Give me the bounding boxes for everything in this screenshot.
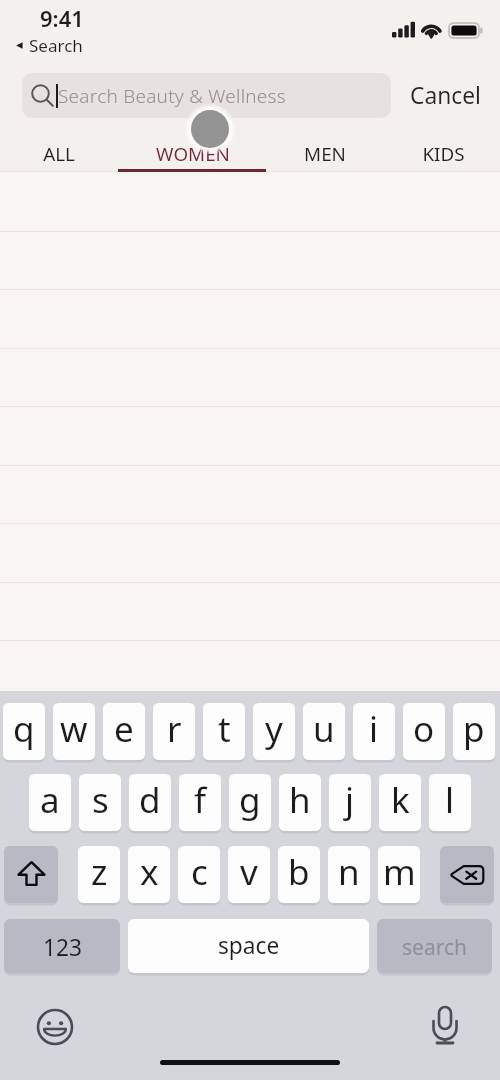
- staticText: d: [139, 776, 161, 824]
- staticText: ALL: [43, 141, 75, 167]
- button[interactable]: w: [53, 703, 95, 760]
- button[interactable]: u: [303, 703, 345, 760]
- staticText: z: [91, 848, 108, 896]
- staticText: p: [463, 705, 485, 753]
- button[interactable]: Search: [12, 34, 85, 56]
- staticText: w: [60, 705, 88, 753]
- button[interactable]: b: [278, 846, 320, 903]
- button[interactable]: i: [353, 703, 395, 760]
- button[interactable]: n: [328, 846, 370, 903]
- button[interactable]: 123: [4, 919, 120, 973]
- staticText: l: [445, 776, 455, 824]
- staticText: x: [140, 848, 159, 896]
- button[interactable]: Shift: [4, 846, 58, 903]
- staticText: q: [13, 705, 35, 753]
- staticText: u: [313, 705, 335, 753]
- button[interactable]: h: [279, 774, 321, 831]
- button[interactable]: k: [379, 774, 421, 831]
- button[interactable]: j: [329, 774, 371, 831]
- button[interactable]: MEN: [263, 136, 387, 172]
- button[interactable]: r: [153, 703, 195, 760]
- button[interactable]: Search Beauty & Wellness: [22, 73, 391, 118]
- staticText: m: [383, 848, 416, 896]
- button[interactable]: Cancel: [404, 78, 487, 113]
- staticText: Search: [29, 34, 83, 56]
- staticText: e: [114, 705, 134, 753]
- staticText: t: [218, 705, 231, 753]
- staticText: space: [218, 930, 280, 961]
- button[interactable]: o: [403, 703, 445, 760]
- button[interactable]: Backspace: [440, 846, 494, 903]
- staticText: y: [265, 705, 283, 753]
- button[interactable]: v: [228, 846, 270, 903]
- button[interactable]: z: [78, 846, 120, 903]
- button[interactable]: Emoji: [38, 1010, 72, 1044]
- button[interactable]: g: [229, 774, 271, 831]
- button[interactable]: t: [203, 703, 245, 760]
- button[interactable]: a: [29, 774, 71, 831]
- staticText: j: [345, 776, 355, 824]
- staticText: search: [402, 933, 467, 962]
- button[interactable]: l: [429, 774, 471, 831]
- staticText: i: [369, 705, 379, 753]
- button[interactable]: c: [178, 846, 220, 903]
- staticText: k: [391, 776, 410, 824]
- button[interactable]: d: [129, 774, 171, 831]
- button[interactable]: y: [253, 703, 295, 760]
- staticText: r: [167, 705, 182, 753]
- staticText: Cancel: [410, 80, 481, 111]
- staticText: KIDS: [422, 141, 465, 167]
- staticText: WOMEN: [156, 141, 230, 167]
- button[interactable]: ALL: [0, 136, 121, 172]
- staticText: s: [92, 776, 109, 824]
- button[interactable]: e: [103, 703, 145, 760]
- staticText: h: [289, 776, 311, 824]
- button[interactable]: Touch indicator: [184, 103, 236, 155]
- button[interactable]: p: [453, 703, 495, 760]
- button[interactable]: search: [377, 919, 492, 973]
- button[interactable]: x: [128, 846, 170, 903]
- staticText: v: [240, 848, 258, 896]
- staticText: 123: [43, 932, 82, 963]
- staticText: o: [413, 705, 435, 753]
- staticText: b: [288, 848, 310, 896]
- staticText: MEN: [304, 141, 346, 167]
- button[interactable]: Dictation: [428, 1007, 462, 1041]
- staticText: a: [40, 776, 60, 824]
- staticText: Search Beauty & Wellness: [58, 83, 286, 109]
- staticText: g: [239, 776, 261, 824]
- button[interactable]: m: [378, 846, 420, 903]
- staticText: f: [194, 776, 207, 824]
- button[interactable]: space: [128, 919, 369, 973]
- button[interactable]: KIDS: [381, 136, 500, 172]
- button[interactable]: q: [3, 703, 45, 760]
- staticText: 9:41: [40, 3, 84, 33]
- button[interactable]: WOMEN: [131, 136, 255, 172]
- button[interactable]: f: [179, 774, 221, 831]
- button[interactable]: s: [79, 774, 121, 831]
- staticText: c: [191, 848, 208, 896]
- staticText: n: [338, 848, 360, 896]
